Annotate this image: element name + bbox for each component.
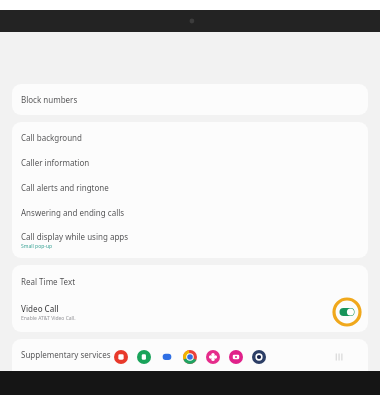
staticText: Supplementary services	[21, 349, 111, 360]
button[interactable]: Block numbers	[12, 87, 368, 112]
button[interactable]: Phone	[137, 350, 151, 364]
button[interactable]: Video Call toggle, on	[332, 297, 362, 327]
button[interactable]: Other call settings	[12, 367, 368, 392]
staticText: Call display while using apps	[21, 231, 129, 242]
button[interactable]: Recent apps	[332, 350, 346, 364]
staticText: Call background	[21, 132, 82, 143]
staticText: Call alerts and ringtone	[21, 182, 109, 193]
staticText: Answering and ending calls	[21, 207, 125, 218]
button[interactable]: Video Call	[12, 295, 368, 329]
button[interactable]: Messages	[160, 350, 174, 364]
staticText: Enable AT&T Video Call.	[21, 315, 76, 322]
button[interactable]: Answering and ending calls	[12, 200, 368, 225]
button[interactable]: Caller information	[12, 150, 368, 175]
button[interactable]: Camera	[252, 350, 266, 364]
button[interactable]: Photo editor	[114, 350, 128, 364]
button[interactable]: Call display while using apps	[12, 225, 368, 255]
button[interactable]: Supplementary services	[12, 342, 368, 367]
staticText: Real Time Text	[21, 276, 76, 287]
staticText: Video Call	[21, 303, 59, 314]
staticText: Small pop-up	[21, 243, 53, 250]
button[interactable]: Real Time Text	[12, 268, 368, 295]
staticText: Caller information	[21, 157, 90, 168]
button[interactable]: Chrome	[183, 350, 197, 364]
staticText: Block numbers	[21, 94, 78, 105]
button[interactable]: Call alerts and ringtone	[12, 175, 368, 200]
button[interactable]: YouTube	[229, 350, 243, 364]
button[interactable]: Call background	[12, 125, 368, 150]
button[interactable]: Photos	[206, 350, 220, 364]
